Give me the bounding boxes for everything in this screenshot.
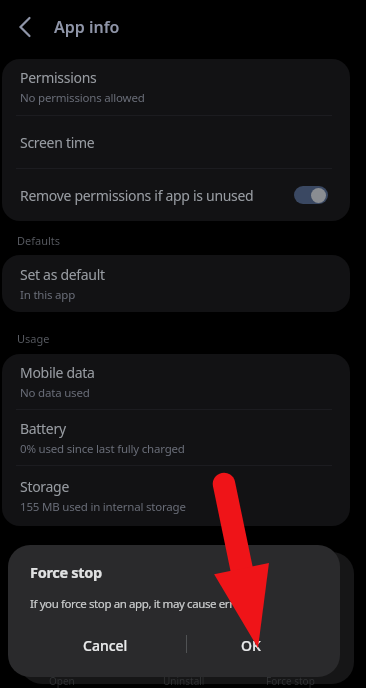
staticText: Mobile data bbox=[20, 363, 95, 382]
staticText: Set as default bbox=[20, 265, 105, 284]
staticText: 155 MB used in internal storage bbox=[20, 499, 186, 515]
button[interactable]: Remove permissions if app is unused bbox=[2, 169, 350, 221]
staticText: No data used bbox=[20, 385, 90, 401]
staticText: Open bbox=[49, 674, 75, 688]
button[interactable]: Set as default bbox=[2, 255, 350, 312]
staticText: App info bbox=[54, 16, 120, 38]
staticText: Battery bbox=[20, 419, 66, 438]
staticText: Uninstall bbox=[163, 674, 205, 688]
staticText: Cancel bbox=[83, 636, 128, 655]
button[interactable]: Screen time bbox=[2, 116, 350, 168]
staticText: Defaults bbox=[17, 233, 61, 248]
button[interactable]: Permissions bbox=[2, 59, 350, 115]
staticText: Screen time bbox=[20, 133, 95, 152]
staticText: Permissions bbox=[20, 68, 97, 87]
button[interactable]: Storage bbox=[2, 466, 350, 526]
staticText: Storage bbox=[20, 477, 69, 496]
button[interactable]: Mobile data bbox=[2, 354, 350, 409]
button[interactable] bbox=[294, 186, 328, 204]
button[interactable]: App info bbox=[0, 0, 120, 54]
staticText: No permissions allowed bbox=[20, 90, 145, 106]
button[interactable]: Cancel bbox=[35, 625, 175, 665]
staticText: OK bbox=[241, 636, 261, 655]
staticText: Remove permissions if app is unused bbox=[20, 186, 254, 205]
button[interactable]: Battery bbox=[2, 410, 350, 465]
staticText: Force stop bbox=[266, 674, 315, 688]
staticText: If you force stop an app, it may cause e… bbox=[30, 596, 256, 612]
staticText: Usage bbox=[17, 331, 50, 346]
staticText: Force stop bbox=[30, 562, 102, 582]
staticText: In this app bbox=[20, 287, 76, 303]
staticText: 0% used since last fully charged bbox=[20, 441, 185, 457]
button[interactable]: OK bbox=[181, 625, 321, 665]
